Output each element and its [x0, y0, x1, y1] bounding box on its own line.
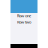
staticText: Row one [17, 13, 31, 18]
staticText: Row two [17, 19, 31, 25]
